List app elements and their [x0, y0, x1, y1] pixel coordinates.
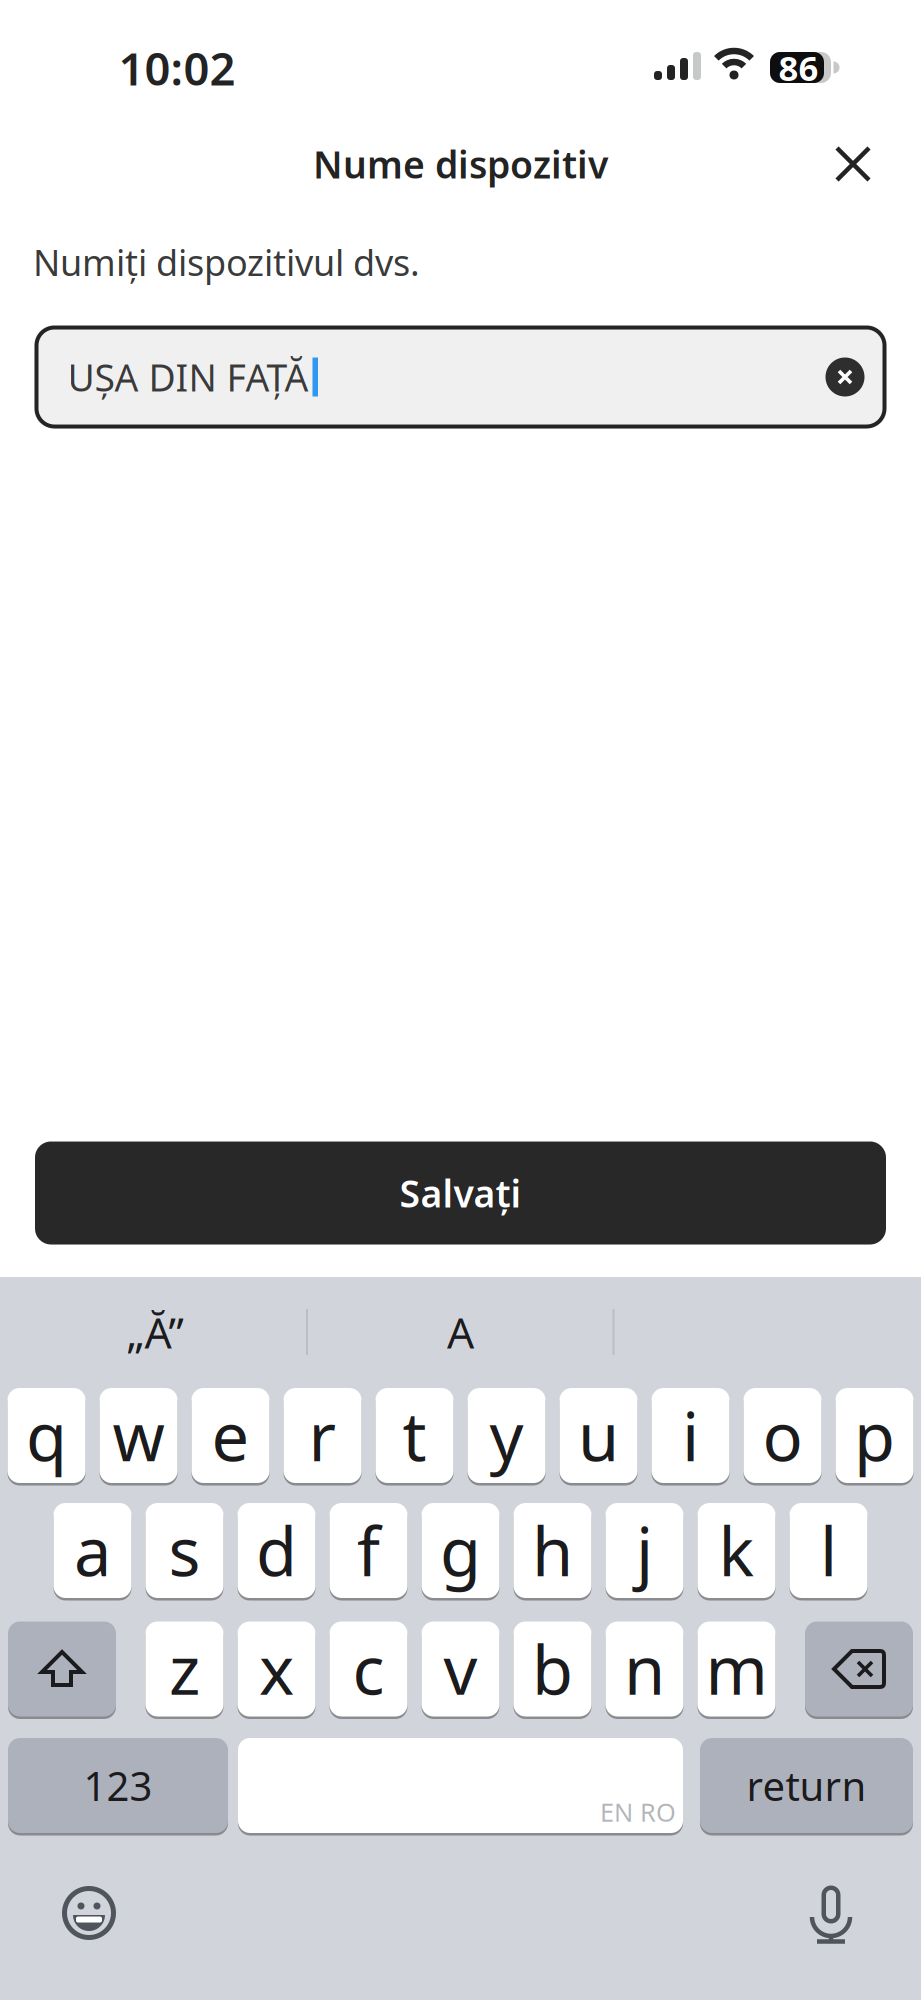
staticText: q — [26, 1391, 67, 1480]
button[interactable]: r — [283, 1386, 361, 1484]
staticText: 123 — [83, 1759, 152, 1812]
staticText: k — [718, 1506, 754, 1595]
staticText: 10:02 — [118, 38, 235, 98]
button[interactable] — [57, 1881, 121, 1945]
button[interactable]: m — [697, 1620, 775, 1718]
button[interactable]: return — [700, 1736, 913, 1834]
staticText: c — [352, 1625, 384, 1713]
staticText: b — [532, 1625, 573, 1713]
button[interactable]: s — [145, 1501, 223, 1599]
staticText: m — [705, 1625, 767, 1713]
staticText: „Ă” — [126, 1304, 183, 1360]
button[interactable]: h — [513, 1501, 591, 1599]
staticText: h — [532, 1506, 573, 1595]
staticText: EN RO — [600, 1795, 676, 1829]
button[interactable] — [825, 357, 864, 396]
button[interactable]: A — [320, 1287, 600, 1377]
staticText: y — [489, 1391, 523, 1480]
staticText: A — [447, 1304, 474, 1360]
staticText: d — [256, 1506, 297, 1595]
button[interactable]: k — [697, 1501, 775, 1599]
staticText: UȘA DIN FAȚĂ — [67, 352, 308, 402]
button[interactable]: z — [145, 1620, 223, 1718]
staticText: j — [636, 1506, 653, 1595]
button[interactable]: p — [835, 1386, 913, 1484]
button[interactable]: q — [7, 1386, 85, 1484]
staticText: o — [762, 1391, 802, 1480]
button[interactable]: x — [237, 1620, 315, 1718]
button[interactable]: n — [605, 1620, 683, 1718]
button[interactable] — [799, 1881, 863, 1945]
staticText: 86 — [778, 44, 818, 90]
staticText: e — [211, 1391, 249, 1480]
button[interactable] — [238, 1736, 683, 1834]
staticText: Salvați — [399, 1168, 521, 1218]
button[interactable] — [8, 1620, 116, 1718]
button[interactable]: e — [191, 1386, 269, 1484]
button[interactable]: 123 — [8, 1736, 228, 1834]
button[interactable]: „Ă” — [15, 1287, 295, 1377]
button[interactable]: a — [53, 1501, 131, 1599]
button[interactable]: u — [559, 1386, 637, 1484]
button[interactable] — [805, 1620, 913, 1718]
staticText: Nume dispozitiv — [313, 139, 608, 189]
staticText: u — [578, 1391, 619, 1480]
staticText: v — [443, 1625, 477, 1713]
staticText: return — [746, 1759, 866, 1812]
staticText: s — [168, 1506, 200, 1595]
button[interactable]: y — [467, 1386, 545, 1484]
staticText: n — [624, 1625, 665, 1713]
staticText: l — [820, 1506, 837, 1595]
staticText: t — [402, 1391, 426, 1480]
button[interactable]: w — [99, 1386, 177, 1484]
staticText: f — [357, 1506, 380, 1595]
button[interactable]: Salvați — [35, 1141, 886, 1244]
staticText: w — [112, 1391, 164, 1480]
staticText: x — [259, 1625, 294, 1713]
button[interactable]: j — [605, 1501, 683, 1599]
staticText: p — [854, 1391, 895, 1480]
button[interactable]: i — [651, 1386, 729, 1484]
button[interactable] — [821, 132, 885, 196]
button[interactable]: d — [237, 1501, 315, 1599]
button[interactable]: f — [329, 1501, 407, 1599]
staticText: a — [74, 1506, 111, 1595]
button[interactable]: v — [421, 1620, 499, 1718]
staticText: r — [308, 1391, 336, 1480]
button[interactable]: c — [329, 1620, 407, 1718]
staticText: i — [682, 1391, 699, 1480]
staticText: z — [169, 1625, 200, 1713]
button[interactable]: t — [375, 1386, 453, 1484]
button[interactable]: l — [789, 1501, 867, 1599]
staticText: Numiți dispozitivul dvs. — [33, 238, 420, 286]
staticText: g — [440, 1506, 481, 1595]
button[interactable]: b — [513, 1620, 591, 1718]
button[interactable]: o — [743, 1386, 821, 1484]
button[interactable]: g — [421, 1501, 499, 1599]
